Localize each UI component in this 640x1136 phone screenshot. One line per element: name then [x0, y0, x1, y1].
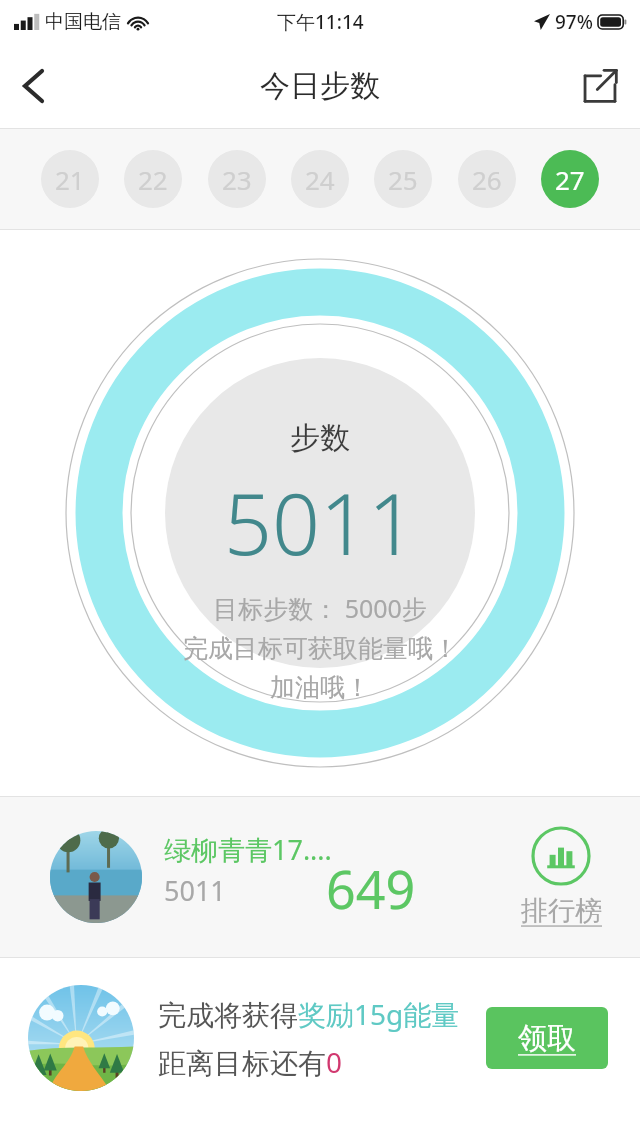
- staticText: 5011: [164, 872, 226, 909]
- button[interactable]: 25: [374, 150, 432, 208]
- staticText: 领取: [518, 1020, 576, 1057]
- staticText: 绿柳青青17....: [164, 831, 332, 868]
- staticText: 649: [326, 853, 416, 924]
- staticText: 加油哦！: [270, 672, 370, 703]
- button[interactable]: 领取: [486, 1007, 608, 1069]
- staticText: 26: [472, 162, 502, 197]
- staticText: 24: [305, 162, 335, 197]
- staticText: 中国电信: [45, 10, 121, 34]
- button[interactable]: 21: [41, 150, 99, 208]
- staticText: 今日步数: [260, 67, 380, 105]
- button[interactable]: 27: [541, 150, 599, 208]
- button[interactable]: 分享: [560, 44, 640, 128]
- button[interactable]: 绿柳青青17....: [0, 797, 640, 957]
- staticText: 目标步数： 5000步: [213, 591, 427, 625]
- staticText: 97%: [555, 9, 593, 35]
- staticText: 排行榜: [521, 894, 602, 928]
- staticText: 22: [138, 162, 168, 197]
- button[interactable]: 返回: [0, 44, 66, 128]
- button[interactable]: 23: [208, 150, 266, 208]
- staticText: 距离目标还有0: [158, 1043, 343, 1081]
- button[interactable]: 22: [124, 150, 182, 208]
- staticText: 步数: [290, 419, 350, 457]
- staticText: 完成目标可获取能量哦！: [183, 633, 458, 664]
- staticText: 23: [222, 162, 252, 197]
- staticText: 21: [55, 162, 85, 197]
- button[interactable]: 26: [458, 150, 516, 208]
- button[interactable]: 24: [291, 150, 349, 208]
- staticText: 5011: [224, 465, 416, 579]
- staticText: 下午11:14: [277, 9, 364, 35]
- staticText: 完成将获得奖励15g能量: [158, 995, 460, 1033]
- staticText: 25: [388, 162, 418, 197]
- staticText: 27: [555, 162, 585, 197]
- button[interactable]: 排行榜: [496, 826, 626, 928]
